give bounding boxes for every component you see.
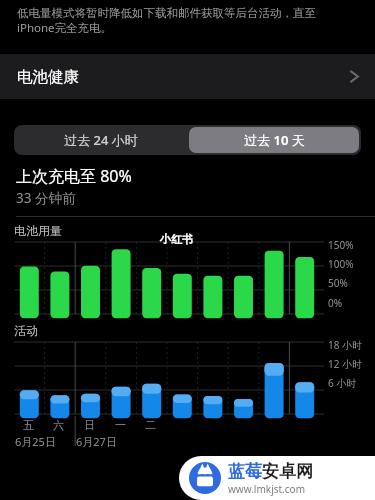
staticText: 150% [328, 238, 354, 252]
staticText: 电池用量 [14, 223, 62, 238]
staticText: 一 [115, 418, 126, 432]
button[interactable]: 电池健康 [0, 54, 375, 99]
staticText: 六 [53, 418, 64, 432]
staticText: 电池健康 [17, 67, 79, 87]
staticText: 6月25日 [15, 434, 56, 449]
staticText: 蓝莓 [228, 461, 262, 482]
staticText: 33 分钟前 [16, 189, 76, 207]
staticText: 小红书 [160, 232, 193, 246]
staticText: 日 [84, 418, 95, 432]
staticText: 过去 24 小时 [64, 131, 138, 149]
staticText: 上次充电至 80% [16, 165, 132, 187]
button[interactable]: 过去 10 天 [189, 127, 359, 153]
staticText: 安卓网 [262, 461, 313, 482]
staticText: 6月27日 [76, 434, 117, 449]
staticText: 18 小时 [328, 338, 363, 352]
staticText: www.lmkjst.com [228, 482, 305, 496]
staticText: iPhone完全充电。 [17, 20, 113, 36]
staticText: 50% [328, 276, 348, 290]
staticText: 低电量模式将暂时降低如下载和邮件获取等后台活动，直至 [17, 6, 316, 20]
staticText: 12 小时 [328, 357, 363, 371]
staticText: 二 [145, 418, 156, 432]
staticText: 五 [23, 418, 34, 432]
staticText: 过去 10 天 [244, 131, 305, 149]
staticText: 活动 [14, 323, 38, 338]
button[interactable]: 过去 24 小时 [14, 125, 187, 155]
staticText: 0% [328, 296, 343, 310]
staticText: 100% [328, 257, 354, 271]
staticText: 6 小时 [328, 376, 357, 390]
